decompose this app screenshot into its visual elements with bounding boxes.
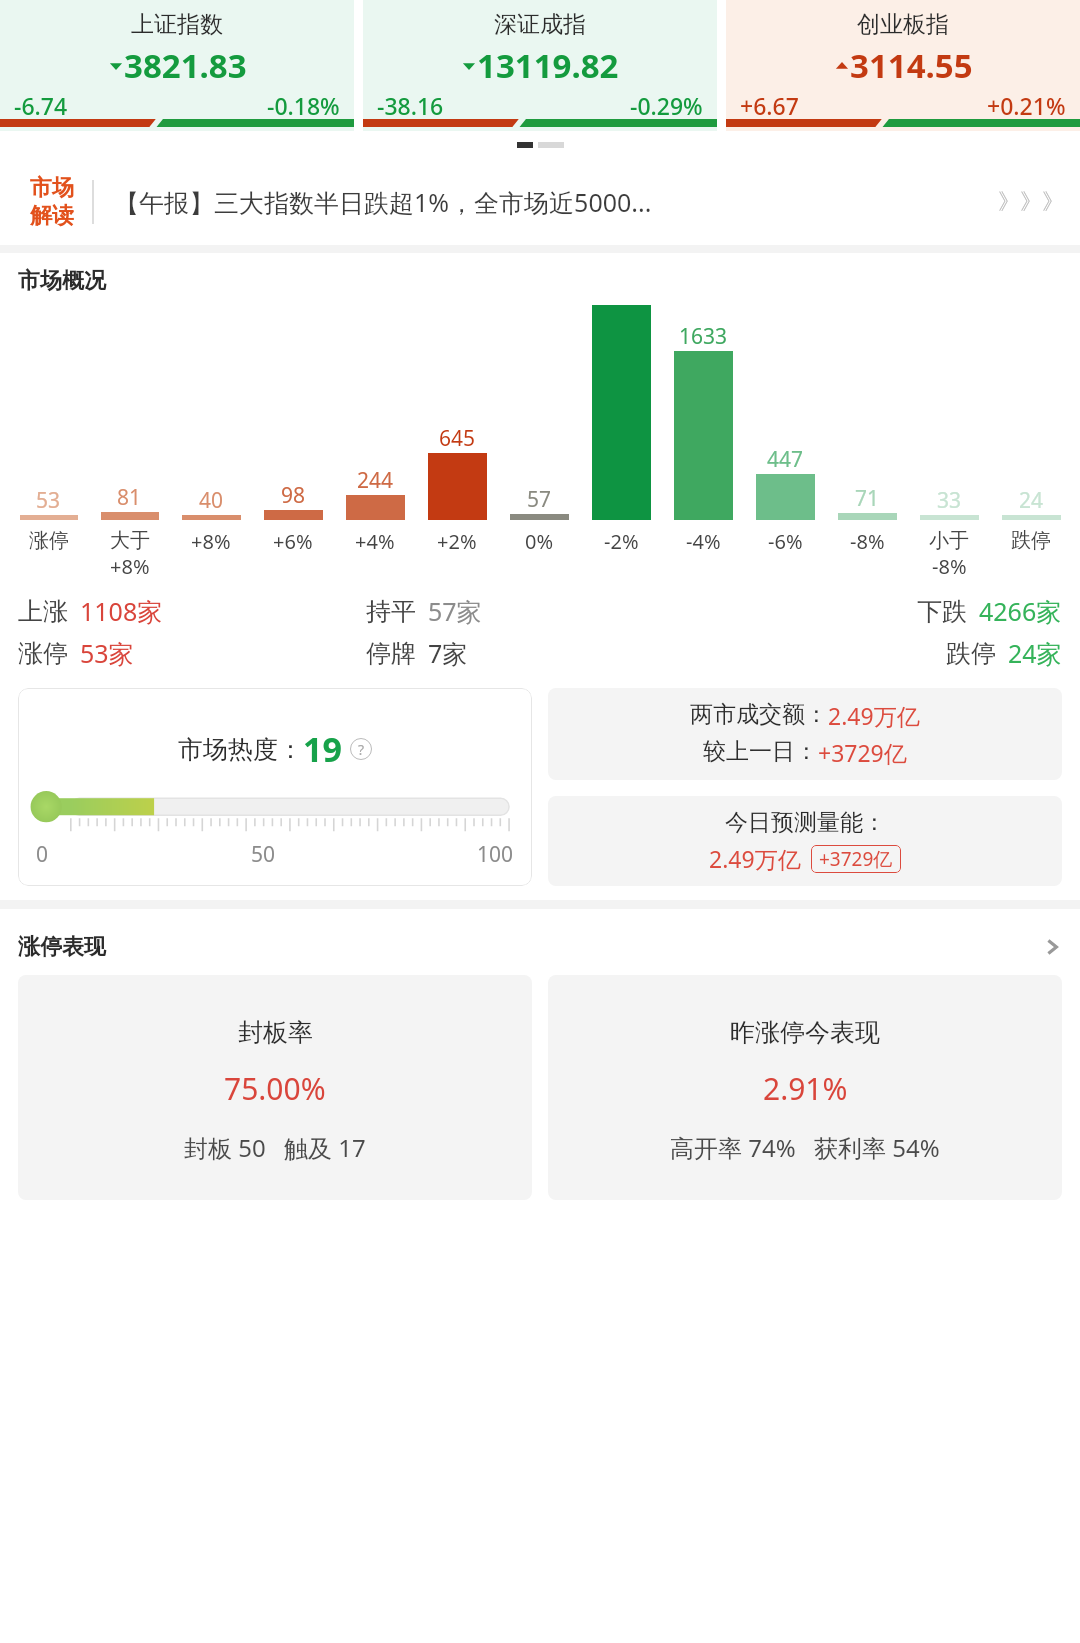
staticText: 市场热度： xyxy=(178,734,303,765)
staticText: 53家 xyxy=(80,636,134,670)
button[interactable]: 今日预测量能： xyxy=(548,796,1062,886)
staticText: 24 xyxy=(1019,486,1044,515)
staticText: -6.74 xyxy=(14,90,68,121)
staticText: 涨停 xyxy=(29,528,69,553)
staticText: 今日预测量能： xyxy=(725,808,886,837)
staticText: 645 xyxy=(439,424,476,453)
button[interactable]: 市场 xyxy=(0,159,1080,245)
button[interactable]: 深证成指 xyxy=(363,0,717,131)
staticText: -8% xyxy=(850,528,885,555)
staticText: 跌停 xyxy=(946,638,996,669)
staticText: 98 xyxy=(281,481,306,510)
staticText: 【午报】三大指数半日跌超1%，全市场近5000... xyxy=(114,185,998,219)
staticText: +3729亿 xyxy=(819,846,893,872)
staticText: 市场概况 xyxy=(18,267,106,295)
staticText: 上证指数 xyxy=(131,10,223,39)
button[interactable]: 封板率 xyxy=(18,975,532,1200)
staticText: 封板率 xyxy=(238,1017,313,1048)
staticText: 1108家 xyxy=(80,594,163,628)
staticText: 下跌 xyxy=(917,596,967,627)
staticText: 上涨 xyxy=(18,596,68,627)
staticText: 跌停 xyxy=(1011,528,1051,553)
staticText: 大于 xyxy=(110,528,150,553)
staticText: -38.16 xyxy=(377,90,444,121)
button[interactable]: 市场热度： xyxy=(18,688,532,886)
staticText: +6.67 xyxy=(740,90,799,121)
staticText: 71 xyxy=(855,484,880,513)
staticText: 4266家 xyxy=(979,594,1062,628)
staticText: 0 xyxy=(36,840,49,869)
staticText: 3821.83 xyxy=(124,43,247,88)
staticText: +3729亿 xyxy=(818,737,907,768)
staticText: 获利率 54% xyxy=(814,1131,940,1164)
staticText: 33 xyxy=(937,486,962,515)
button[interactable]: 创业板指 xyxy=(726,0,1080,131)
staticText: 》》》 xyxy=(998,188,1064,216)
staticText: -0.18% xyxy=(267,90,340,121)
staticText: +2% xyxy=(437,528,477,555)
staticText: 53 xyxy=(36,486,61,515)
staticText: 昨涨停今表现 xyxy=(730,1017,880,1048)
staticText: 持平 xyxy=(366,596,416,627)
staticText: 75.00% xyxy=(224,1068,326,1109)
staticText: +8% xyxy=(191,528,231,555)
staticText: 13119.82 xyxy=(477,43,619,88)
staticText: -0.29% xyxy=(630,90,703,121)
other: More xyxy=(1042,937,1062,957)
staticText: +4% xyxy=(355,528,395,555)
staticText: 小于 xyxy=(929,528,969,553)
staticText: -2% xyxy=(604,528,639,555)
staticText: +6% xyxy=(273,528,313,555)
staticText: 涨停 xyxy=(18,638,68,669)
staticText: 创业板指 xyxy=(857,10,949,39)
staticText: 24家 xyxy=(1008,636,1062,670)
staticText: 57 xyxy=(527,485,552,514)
staticText: 较上一日： xyxy=(703,737,818,766)
staticText: 19 xyxy=(303,726,342,772)
staticText: 2.91% xyxy=(763,1068,848,1109)
staticText: 解读 xyxy=(30,202,74,230)
staticText: 50 xyxy=(251,840,276,869)
staticText: -8% xyxy=(932,553,967,580)
button[interactable]: 涨停表现 xyxy=(18,919,1062,975)
button[interactable]: Help xyxy=(350,738,372,760)
staticText: 封板 50 xyxy=(184,1131,266,1164)
staticText: 触及 17 xyxy=(284,1131,366,1164)
staticText: 两市成交额： xyxy=(690,700,828,729)
staticText: 0% xyxy=(525,528,554,555)
staticText: 57家 xyxy=(428,594,482,628)
staticText: 100 xyxy=(477,840,514,869)
staticText: 7家 xyxy=(428,636,468,670)
button[interactable]: 两市成交额： xyxy=(548,688,1062,780)
staticText: 81 xyxy=(117,483,142,512)
staticText: 高开率 74% xyxy=(670,1131,796,1164)
staticText: 1633 xyxy=(679,322,728,351)
button[interactable]: 昨涨停今表现 xyxy=(548,975,1062,1200)
staticText: 市场 xyxy=(30,174,74,202)
staticText: ? xyxy=(358,740,365,759)
staticText: 2.49万亿 xyxy=(709,843,801,874)
staticText: +0.21% xyxy=(987,90,1066,121)
staticText: 447 xyxy=(767,445,804,474)
staticText: 3114.55 xyxy=(850,43,973,88)
staticText: 2.49万亿 xyxy=(828,700,920,731)
staticText: 停牌 xyxy=(366,638,416,669)
button[interactable]: 上证指数 xyxy=(0,0,354,131)
staticText: -6% xyxy=(768,528,803,555)
staticText: 244 xyxy=(357,466,394,495)
staticText: 涨停表现 xyxy=(18,933,106,961)
staticText: +8% xyxy=(110,553,150,580)
staticText: 深证成指 xyxy=(494,10,586,39)
staticText: 40 xyxy=(199,486,224,515)
staticText: -4% xyxy=(686,528,721,555)
